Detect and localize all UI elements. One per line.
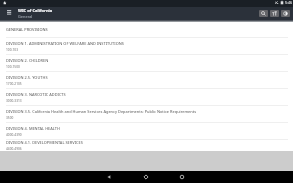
staticText: 3500: [6, 116, 14, 120]
staticText: DIVISION 4. MENTAL HEALTH: [6, 126, 60, 131]
button[interactable]: DIVISION 4.1. DEVELOPMENTAL SERVICES: [0, 140, 293, 151]
button[interactable]: DIVISION 3.5. California Health and Huma…: [0, 106, 293, 122]
button[interactable]: Recent apps: [175, 171, 189, 183]
staticText: 4400-4906: [6, 147, 22, 151]
staticText: DIVISION 4.1. DEVELOPMENTAL SERVICES: [6, 140, 83, 145]
staticText: GENERAL PROVISIONS: [6, 27, 48, 32]
staticText: 1700-2105: [6, 82, 22, 86]
staticText: DIVISION 2.5. YOUTHS: [6, 75, 48, 80]
staticText: 100-1500: [6, 65, 20, 69]
button[interactable]: DIVISION 2. CHILDREN: [0, 55, 293, 71]
staticText: 100-103: [6, 48, 18, 52]
staticText: DIVISION 1. ADMINISTRATION OF WELFARE AN…: [6, 41, 124, 46]
staticText: WIC of California: [18, 8, 53, 14]
staticText: DIVISION 3. NARCOTIC ADDICTS: [6, 92, 66, 97]
staticText: 4000-4390: [6, 133, 22, 137]
staticText: General: [18, 14, 33, 19]
button[interactable]: DIVISION 3. NARCOTIC ADDICTS: [0, 89, 293, 105]
button[interactable]: Home: [139, 171, 153, 183]
staticText: 5:46: [285, 0, 293, 5]
button[interactable]: Open navigation drawer: [0, 7, 18, 22]
staticText: DIVISION 3.5. California Health and Huma…: [6, 109, 197, 114]
button[interactable]: Back: [102, 171, 116, 183]
button[interactable]: DIVISION 1. ADMINISTRATION OF WELFARE AN…: [0, 38, 293, 54]
button[interactable]: Search: [259, 10, 268, 17]
staticText: DIVISION 2. CHILDREN: [6, 58, 49, 63]
button[interactable]: Change text size: [270, 10, 279, 17]
button[interactable]: DIVISION 2.5. YOUTHS: [0, 72, 293, 88]
staticText: 3000-3313: [6, 99, 22, 103]
button[interactable]: Toggle night mode: [281, 10, 290, 17]
button[interactable]: DIVISION 4. MENTAL HEALTH: [0, 123, 293, 139]
